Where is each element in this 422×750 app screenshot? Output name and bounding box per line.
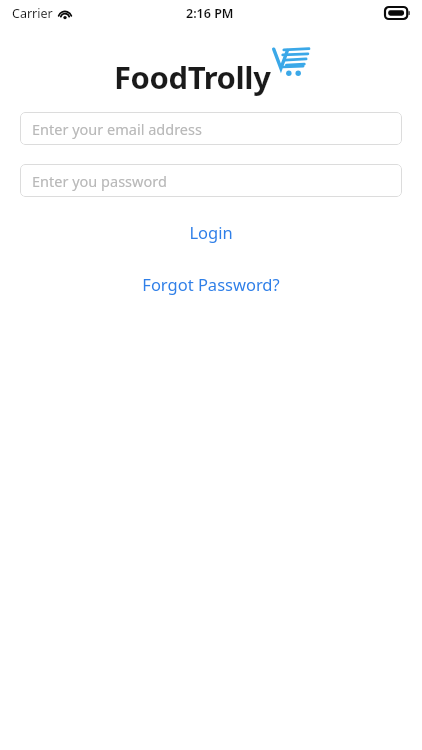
staticText: Enter you password xyxy=(32,171,167,191)
button[interactable]: Forgot Password? xyxy=(128,268,294,300)
staticText: FoodTrolly xyxy=(114,56,271,98)
button[interactable]: Login xyxy=(171,216,251,248)
staticText: Carrier xyxy=(12,5,53,22)
button[interactable]: Enter you password xyxy=(20,164,402,197)
staticText: 2:16 PM xyxy=(186,5,234,22)
staticText: Enter your email address xyxy=(32,119,202,139)
staticText: Forgot Password? xyxy=(142,273,280,295)
staticText: Login xyxy=(189,221,233,243)
button[interactable]: Enter your email address xyxy=(20,112,402,145)
other: FoodTrolly shopping cart logo xyxy=(273,46,309,78)
